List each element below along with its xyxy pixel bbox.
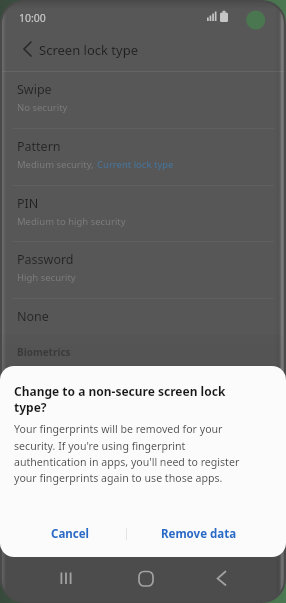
button[interactable]: Password: [2, 242, 284, 299]
staticText: Medium to high security: [17, 215, 126, 228]
staticText: Pattern: [17, 138, 61, 155]
staticText: No security: [17, 101, 68, 114]
staticText: Password: [17, 251, 74, 268]
staticText: Your fingerprints will be removed for yo…: [14, 422, 240, 485]
staticText: Swipe: [17, 81, 52, 98]
staticText: Screen lock type: [39, 41, 138, 59]
staticText: 10:00: [19, 11, 46, 25]
button[interactable]: [2, 30, 43, 71]
button[interactable]: None: [2, 299, 284, 335]
button[interactable]: [24, 555, 104, 601]
button[interactable]: Swipe: [2, 72, 284, 129]
button[interactable]: Remove data: [127, 511, 271, 557]
staticText: Cancel: [51, 526, 89, 542]
button[interactable]: Cancel: [14, 511, 126, 557]
staticText: None: [17, 308, 49, 325]
staticText: Biometrics: [17, 345, 71, 359]
staticText: High security: [17, 271, 76, 284]
staticText: PIN: [17, 195, 39, 212]
button[interactable]: Pattern: [2, 129, 284, 186]
staticText: Remove data: [161, 526, 237, 542]
button[interactable]: [104, 555, 183, 601]
staticText: Current lock type: [97, 158, 174, 171]
staticText: Change to a non-secure screen lock type?: [14, 383, 226, 415]
staticText: Medium security,: [17, 158, 97, 171]
button[interactable]: PIN: [2, 186, 284, 242]
button[interactable]: [183, 555, 262, 601]
